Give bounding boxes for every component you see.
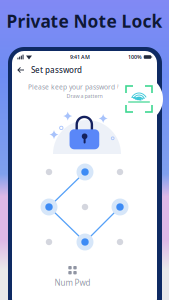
staticText: Please keep your password in mind bbox=[28, 83, 141, 91]
staticText: 9:41 AM bbox=[70, 53, 90, 61]
staticText: Draw a pattern bbox=[66, 92, 102, 100]
button[interactable]: Num Pwd bbox=[54, 266, 90, 288]
staticText: 100% bbox=[128, 53, 142, 61]
staticText: Set password bbox=[31, 65, 82, 75]
staticText: Private Note Lock bbox=[6, 9, 162, 32]
staticText: Num Pwd bbox=[54, 277, 90, 288]
button[interactable]: Back bbox=[17, 66, 25, 74]
